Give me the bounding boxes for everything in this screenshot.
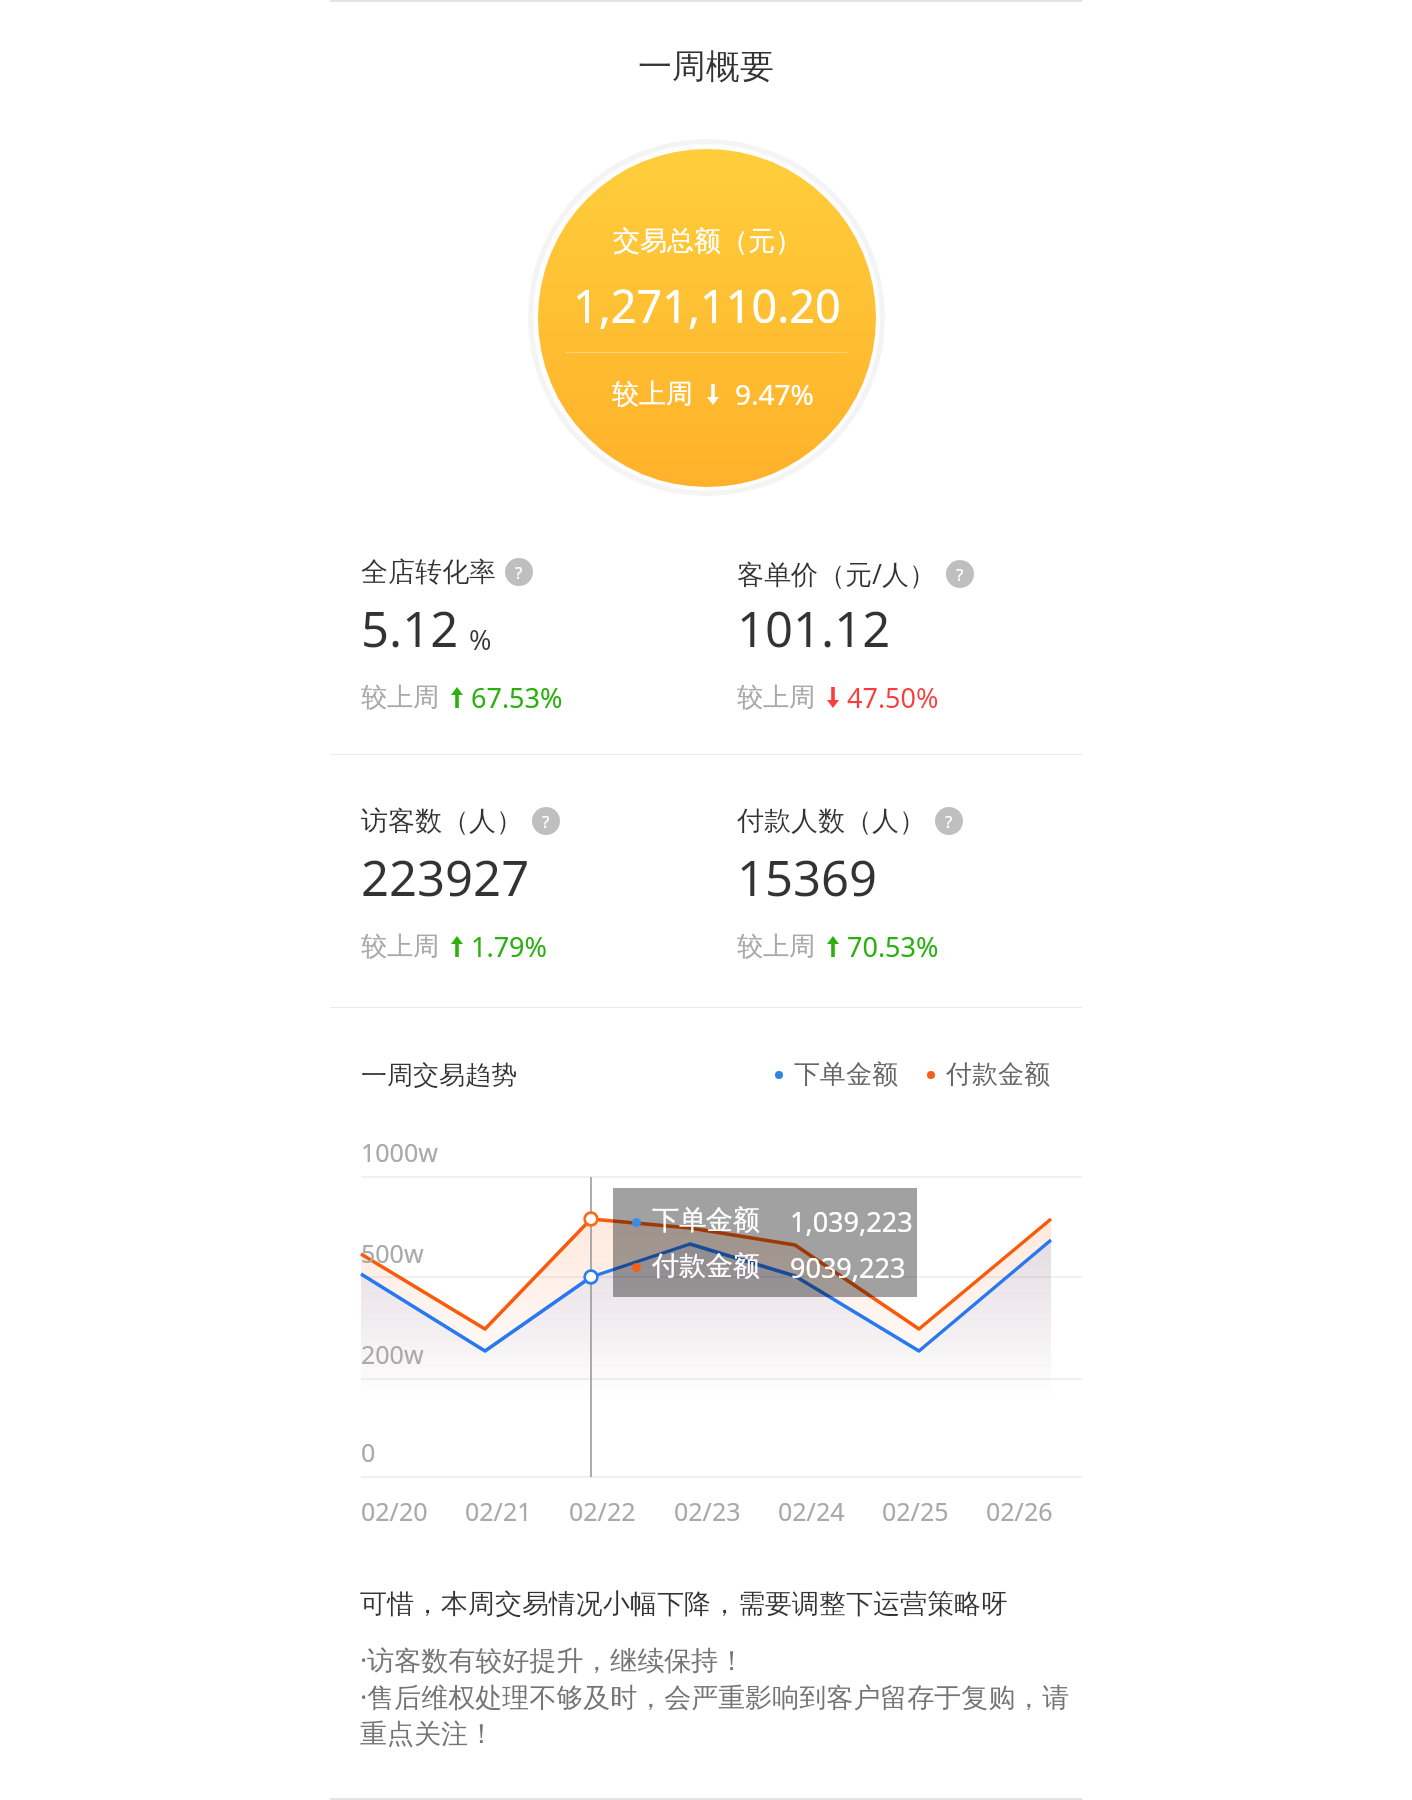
staticText: ? <box>956 563 964 586</box>
staticText: 47.50% <box>847 679 939 716</box>
staticText: 1,039,223 <box>790 1203 913 1240</box>
staticText: 较上周 <box>612 377 693 411</box>
staticText: 全店转化率 <box>361 555 496 589</box>
staticText: 500w <box>361 1236 424 1270</box>
staticText: 下单金额 <box>794 1058 898 1091</box>
staticText: 一周概要 <box>638 45 774 88</box>
staticText: 访客数（人） <box>361 804 523 838</box>
button[interactable]: 全店转化率 <box>330 551 706 731</box>
staticText: 02/26 <box>986 1494 1053 1528</box>
staticText: 02/21 <box>465 1494 532 1528</box>
staticText: 02/22 <box>569 1494 636 1528</box>
staticText: 下单金额 <box>652 1203 760 1237</box>
staticText: 一周交易趋势 <box>361 1059 517 1092</box>
staticText: ? <box>945 810 953 833</box>
staticText: 1.79% <box>471 928 548 965</box>
button[interactable]: 付款人数（人） <box>706 800 1082 980</box>
staticText: 02/25 <box>882 1494 949 1528</box>
staticText: ? <box>515 561 523 584</box>
staticText: 70.53% <box>847 928 939 965</box>
staticText: 0 <box>361 1435 376 1469</box>
staticText: 可惜，本周交易情况小幅下降，需要调整下运营策略呀 <box>360 1587 1008 1621</box>
button[interactable]: 关于付款人数（人） 的说明 <box>935 807 963 835</box>
staticText: 02/24 <box>778 1494 845 1528</box>
button[interactable]: 客单价（元/人） <box>706 551 1082 731</box>
staticText: 付款金额 <box>946 1058 1050 1091</box>
button[interactable]: 关于访客数（人） 的说明 <box>532 807 560 835</box>
staticText: 付款金额 <box>652 1249 760 1283</box>
button[interactable]: 访客数（人） <box>330 800 706 980</box>
staticText: 付款人数（人） <box>737 804 926 838</box>
staticText: 02/20 <box>361 1494 428 1528</box>
button[interactable]: 关于客单价（元/人） 的说明 <box>946 560 974 588</box>
staticText: 5.12 <box>361 595 459 662</box>
staticText: 9039,223 <box>790 1249 906 1286</box>
staticText: ? <box>542 810 550 833</box>
staticText: 67.53% <box>471 679 563 716</box>
staticText: 交易总额（元） <box>613 224 802 258</box>
staticText: 较上周 <box>361 930 439 963</box>
staticText: ·访客数有较好提升，继续保持！ ·售后维权处理不够及时，会严重影响到客户留存于复… <box>360 1641 1082 1751</box>
staticText: 02/23 <box>674 1494 741 1528</box>
staticText: 1,271,110.20 <box>573 275 841 336</box>
staticText: 200w <box>361 1337 424 1371</box>
staticText: 15369 <box>737 844 878 911</box>
staticText: % <box>469 621 492 658</box>
button[interactable]: 下单金额 <box>775 1058 1050 1091</box>
button[interactable]: 关于全店转化率 的说明 <box>505 558 533 586</box>
staticText: 9.47% <box>735 375 814 413</box>
staticText: 1000w <box>361 1135 438 1169</box>
staticText: 客单价（元/人） <box>737 555 937 592</box>
staticText: 101.12 <box>737 595 891 662</box>
staticText: 较上周 <box>361 681 439 714</box>
staticText: 较上周 <box>737 681 815 714</box>
staticText: 较上周 <box>737 930 815 963</box>
staticText: 223927 <box>361 844 530 911</box>
